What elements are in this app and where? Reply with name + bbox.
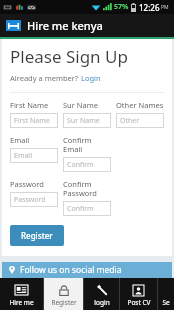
staticText: Sur Name bbox=[67, 116, 100, 126]
button[interactable]: First Name bbox=[10, 113, 58, 128]
button[interactable]: Post CV bbox=[120, 278, 157, 310]
other: Post CV bbox=[133, 285, 144, 296]
button[interactable]: Other Name bbox=[116, 113, 164, 128]
button[interactable]: Confirm Emai bbox=[63, 157, 111, 172]
staticText: PM bbox=[161, 4, 169, 11]
staticText: Hire me kenya bbox=[0, 298, 43, 307]
staticText: Confirm Passw bbox=[67, 204, 107, 214]
staticText: First Name bbox=[14, 116, 50, 126]
button[interactable]: Follow us on social media bbox=[2, 262, 172, 278]
staticText: Se bbox=[162, 298, 170, 307]
staticText: Confirm Email bbox=[63, 135, 111, 154]
button[interactable]: Email Addres bbox=[10, 148, 58, 163]
other: Hire me kenya home bbox=[15, 285, 28, 295]
button[interactable]: Login bbox=[81, 73, 101, 83]
staticText: Confirm Password bbox=[63, 179, 111, 198]
button[interactable]: Se bbox=[158, 278, 174, 310]
staticText: Post CV bbox=[127, 298, 151, 307]
staticText: Email Addres bbox=[14, 151, 54, 161]
staticText: Password bbox=[10, 179, 44, 189]
other: login bbox=[96, 284, 108, 296]
button[interactable]: Hire me kenya home bbox=[0, 278, 43, 310]
staticText: Follow us on social media bbox=[20, 264, 122, 276]
staticText: First Name bbox=[10, 100, 49, 110]
staticText: login bbox=[94, 298, 110, 307]
staticText: Other Names bbox=[116, 100, 164, 110]
staticText: Confirm Emai bbox=[67, 160, 107, 170]
staticText: Register bbox=[21, 230, 53, 241]
staticText: Register bbox=[51, 298, 77, 307]
staticText: 57% bbox=[114, 2, 129, 12]
button[interactable]: login bbox=[84, 278, 119, 310]
other: Register bbox=[59, 285, 69, 296]
button[interactable]: Confirm Passw bbox=[63, 201, 111, 216]
staticText: Email bbox=[10, 135, 30, 145]
staticText: Please Sign Up bbox=[10, 45, 128, 68]
staticText: Other Name bbox=[120, 116, 160, 126]
staticText: Hire me kenya bbox=[27, 18, 103, 33]
staticText: Sur Name bbox=[63, 100, 98, 110]
button[interactable]: Register bbox=[44, 278, 83, 310]
staticText: Login bbox=[81, 73, 101, 83]
button[interactable]: Register bbox=[10, 225, 64, 246]
staticText: Already a member? bbox=[10, 73, 81, 83]
staticText: 12:26 bbox=[139, 2, 160, 13]
button[interactable]: Sur Name bbox=[63, 113, 111, 128]
button[interactable]: Password bbox=[10, 192, 58, 207]
staticText: Password bbox=[14, 195, 46, 205]
